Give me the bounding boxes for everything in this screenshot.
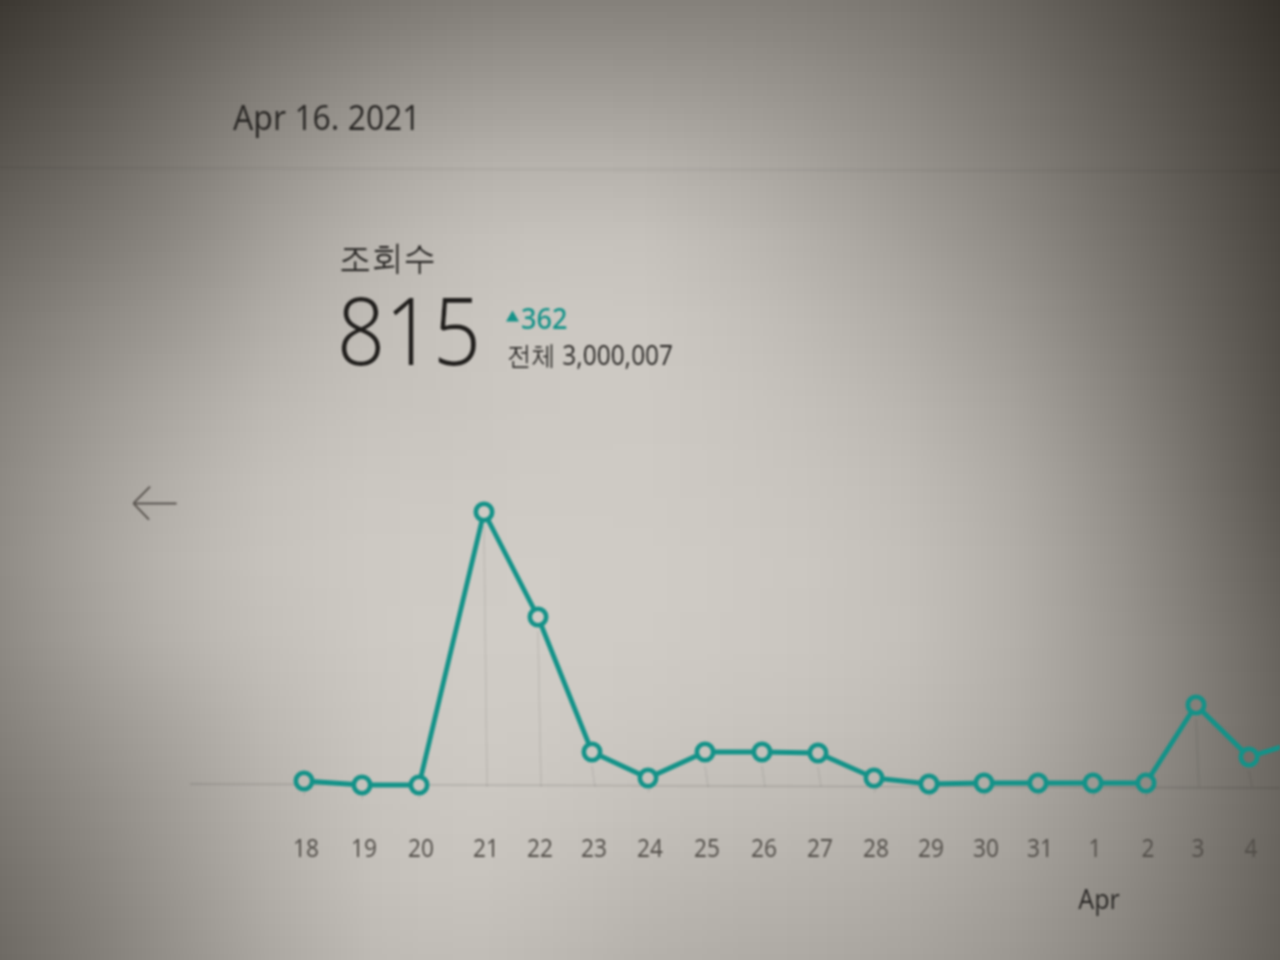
staticText: 1	[1080, 829, 1110, 865]
staticText: 25	[692, 829, 722, 865]
staticText: 18	[291, 829, 321, 865]
staticText: 362	[521, 299, 568, 338]
staticText: 19	[349, 829, 379, 865]
staticText: Apr	[1076, 880, 1122, 918]
staticText: 전체 3,000,007	[507, 336, 674, 373]
staticText: 28	[861, 829, 891, 865]
staticText: 24	[635, 829, 665, 865]
staticText: 20	[406, 829, 436, 865]
staticText: 815	[337, 264, 482, 393]
staticText: 23	[579, 829, 609, 865]
staticText: 22	[525, 829, 555, 865]
staticText: Apr 16. 2021	[233, 94, 421, 140]
staticText: 31	[1025, 829, 1055, 865]
button[interactable]: Back	[113, 473, 189, 535]
staticText: 30	[971, 829, 1001, 865]
staticText: 4	[1236, 829, 1266, 865]
staticText: 2	[1133, 829, 1163, 865]
staticText: 3	[1183, 829, 1213, 865]
staticText: 29	[916, 829, 946, 865]
staticText: 26	[749, 829, 779, 865]
staticText: 조회수	[339, 237, 436, 280]
staticText: 21	[471, 829, 501, 865]
staticText: 27	[805, 829, 835, 865]
